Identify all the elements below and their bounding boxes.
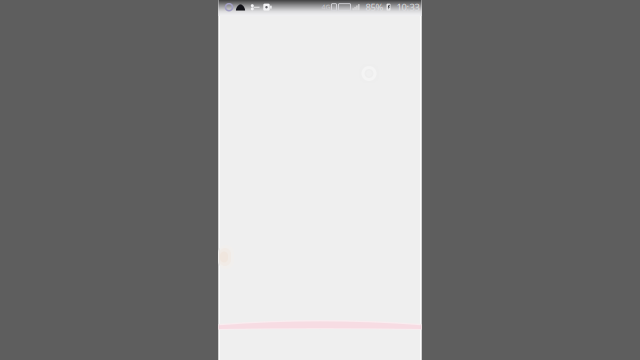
staticText: 10:33: [396, 1, 419, 13]
staticText: 4G: [321, 3, 330, 12]
staticText: 85%: [365, 1, 383, 13]
button[interactable]: Notifications: [218, 2, 421, 12]
button[interactable]: Status: 4G, battery 85 percent, 10:33: [218, 2, 421, 12]
